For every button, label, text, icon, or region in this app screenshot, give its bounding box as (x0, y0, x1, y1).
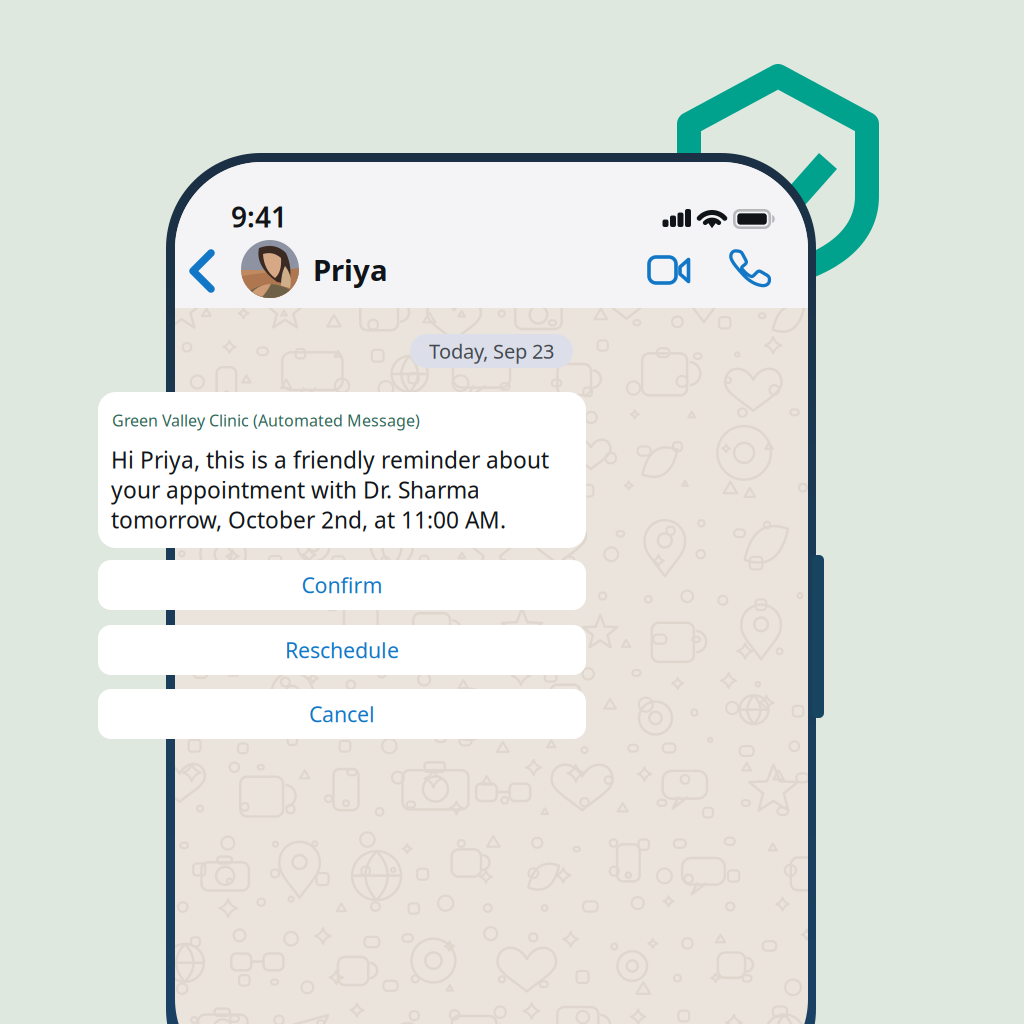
staticText: Today, Sep 23 (429, 338, 554, 364)
staticText: Green Valley Clinic (Automated Message) (112, 410, 420, 431)
button[interactable]: Video call (0, 0, 1024, 1024)
staticText: Cancel (309, 700, 375, 728)
staticText: tomorrow, October 2nd, at 11:00 AM. (111, 505, 506, 535)
button[interactable]: Reschedule (98, 625, 586, 675)
staticText: Confirm (301, 571, 382, 599)
staticText: Hi Priya, this is a friendly reminder ab… (111, 445, 549, 475)
button[interactable]: Voice call (0, 0, 1024, 1024)
button[interactable]: Back (0, 0, 1024, 1024)
staticText: your appointment with Dr. Sharma (111, 475, 480, 505)
button[interactable]: Cancel (98, 689, 586, 739)
staticText: Priya (313, 250, 388, 289)
button[interactable]: Confirm (98, 560, 586, 610)
staticText: Reschedule (285, 636, 399, 664)
staticText: 9:41 (231, 198, 287, 235)
